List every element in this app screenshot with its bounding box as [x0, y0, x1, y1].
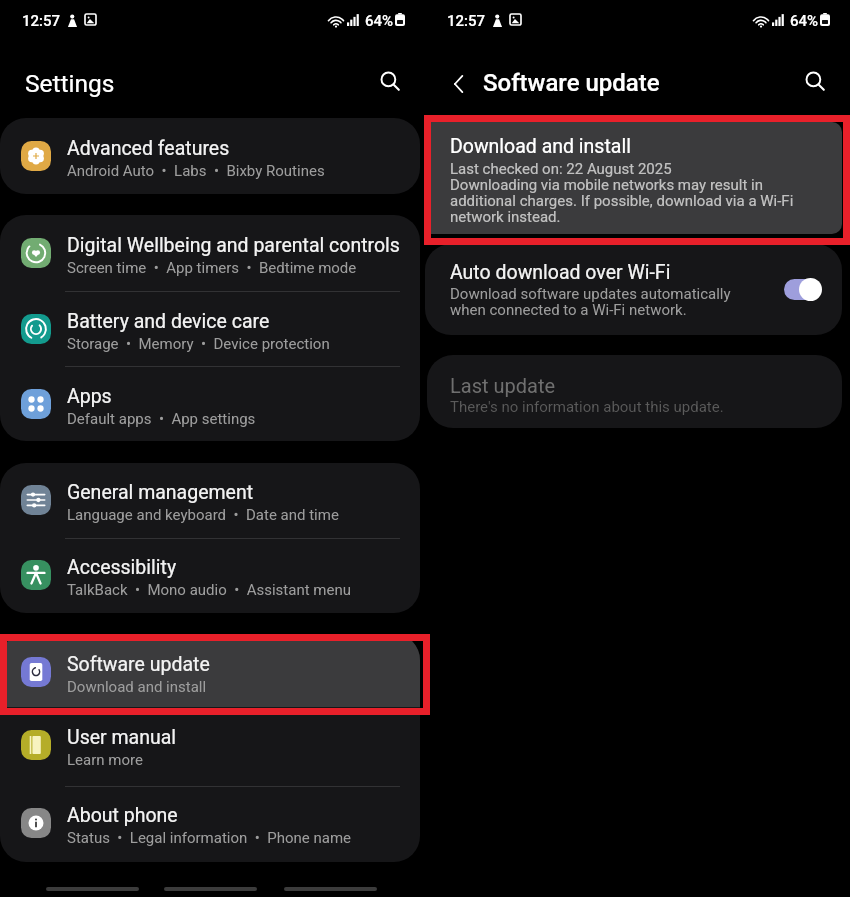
button[interactable]: Search: [377, 68, 405, 96]
staticText: Screen time • App timers • Bedtime mode: [67, 259, 357, 277]
staticText: Last update: [450, 374, 556, 397]
staticText: There's no information about this update…: [450, 398, 724, 416]
staticText: TalkBack • Mono audio • Assistant menu: [67, 581, 351, 599]
staticText: Battery and device care: [67, 310, 270, 333]
button[interactable]: [0, 463, 420, 538]
button[interactable]: [0, 634, 420, 707]
staticText: Settings: [25, 69, 115, 98]
button[interactable]: Auto download over Wi-Fi toggle: [784, 279, 821, 300]
button[interactable]: [0, 291, 420, 366]
staticText: Status • Legal information • Phone name: [67, 829, 352, 847]
staticText: Software update: [483, 69, 660, 97]
staticText: Language and keyboard • Date and time: [67, 506, 339, 524]
staticText: 12:57: [22, 12, 61, 30]
staticText: 12:57: [447, 12, 486, 30]
button[interactable]: [0, 786, 420, 862]
staticText: 64%: [790, 12, 819, 30]
staticText: Software update: [67, 653, 210, 676]
staticText: Accessibility: [67, 556, 177, 579]
button[interactable]: [0, 707, 420, 786]
staticText: Advanced features: [67, 137, 230, 160]
staticText: About phone: [67, 804, 178, 827]
staticText: 64%: [365, 12, 394, 30]
staticText: Download software updates automatically …: [450, 285, 740, 319]
button[interactable]: Back: [441, 66, 477, 102]
staticText: Digital Wellbeing and parental controls: [67, 234, 400, 257]
button[interactable]: Search: [802, 68, 830, 96]
staticText: Download and install: [67, 678, 207, 696]
staticText: Storage • Memory • Device protection: [67, 335, 330, 353]
button[interactable]: Auto download over Wi-Fi: [425, 244, 842, 335]
staticText: User manual: [67, 726, 177, 749]
staticText: Apps: [67, 385, 112, 408]
button[interactable]: [0, 366, 420, 441]
staticText: Download and install: [450, 135, 631, 158]
staticText: Last checked on: 22 August 2025 Download…: [450, 160, 800, 226]
staticText: General management: [67, 481, 254, 504]
button[interactable]: [0, 215, 420, 291]
button[interactable]: [0, 118, 420, 194]
staticText: Learn more: [67, 751, 143, 769]
staticText: Android Auto • Labs • Bixby Routines: [67, 162, 325, 180]
button[interactable]: Download and install: [425, 122, 842, 234]
button[interactable]: [0, 538, 420, 613]
staticText: Default apps • App settings: [67, 410, 256, 428]
staticText: Auto download over Wi-Fi: [450, 261, 671, 284]
